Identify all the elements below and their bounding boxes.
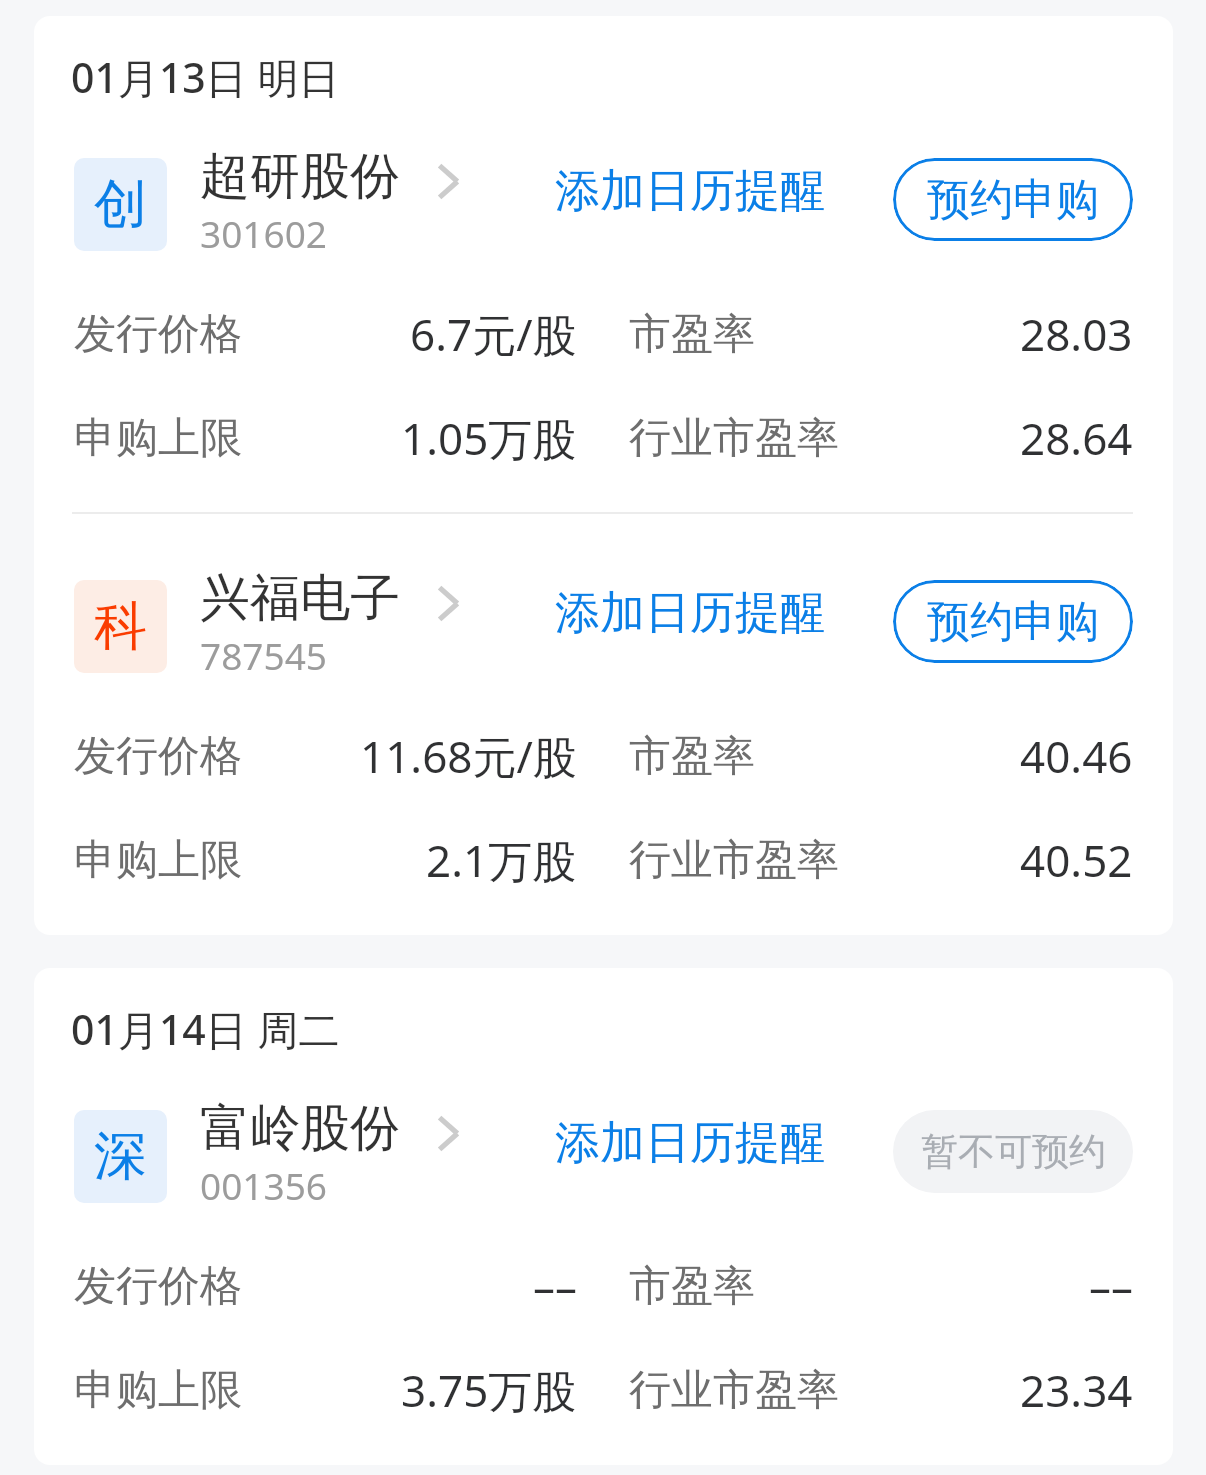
staticText: 申购上限 [74, 834, 242, 887]
staticText: 申购上限 [74, 412, 242, 465]
staticText: 301602 [200, 208, 327, 258]
staticText: 申购上限 [74, 1364, 242, 1417]
staticText: 28.64 [1020, 408, 1133, 468]
staticText: 市盈率 [629, 1260, 755, 1313]
staticText: 787545 [200, 630, 327, 680]
staticText: 40.46 [1020, 726, 1133, 786]
staticText: 行业市盈率 [629, 1364, 839, 1417]
staticText: 暂不可预约 [921, 1128, 1106, 1175]
staticText: 发行价格 [74, 1260, 242, 1313]
staticText: 市盈率 [629, 730, 755, 783]
staticText: 兴福电子 [200, 567, 400, 630]
staticText: 创 [94, 171, 147, 238]
staticText: 发行价格 [74, 730, 242, 783]
staticText: 市盈率 [629, 308, 755, 361]
staticText: 1.05万股 [401, 408, 577, 468]
other: 查看详情 [437, 585, 460, 622]
staticText: 行业市盈率 [629, 834, 839, 887]
staticText: 01月13日 明日 [71, 49, 340, 105]
staticText: 28.03 [1020, 304, 1133, 364]
button[interactable]: 添加日历提醒 [555, 574, 829, 653]
staticText: –– [1089, 1256, 1133, 1316]
other: 查看详情 [437, 1115, 460, 1152]
staticText: 添加日历提醒 [555, 1115, 825, 1172]
staticText: 40.52 [1020, 830, 1133, 890]
button[interactable]: 创 [74, 158, 167, 251]
staticText: 添加日历提醒 [555, 163, 825, 220]
staticText: 6.7元/股 [410, 304, 577, 364]
staticText: 添加日历提醒 [555, 585, 825, 642]
staticText: 富岭股份 [200, 1097, 400, 1160]
staticText: 行业市盈率 [629, 412, 839, 465]
button[interactable]: 预约申购 [893, 158, 1133, 241]
staticText: 科 [94, 593, 147, 660]
button[interactable]: 科 [74, 580, 167, 673]
other: 查看详情 [437, 163, 460, 200]
staticText: 001356 [200, 1160, 327, 1210]
staticText: 01月14日 周二 [71, 1001, 340, 1057]
staticText: –– [533, 1256, 577, 1316]
staticText: 11.68元/股 [360, 726, 577, 786]
button[interactable]: 兴福电子 [200, 567, 460, 680]
staticText: 深 [94, 1123, 147, 1190]
staticText: 23.34 [1020, 1360, 1133, 1420]
button[interactable]: 超研股份 [200, 145, 460, 258]
button[interactable]: 添加日历提醒 [555, 1104, 829, 1183]
button[interactable]: 富岭股份 [200, 1097, 460, 1210]
button[interactable]: 添加日历提醒 [555, 152, 829, 231]
staticText: 超研股份 [200, 145, 400, 208]
staticText: 发行价格 [74, 308, 242, 361]
staticText: 2.1万股 [426, 830, 577, 890]
button[interactable]: 暂不可预约 [893, 1110, 1133, 1193]
button[interactable]: 预约申购 [893, 580, 1133, 663]
staticText: 预约申购 [927, 173, 1099, 227]
staticText: 预约申购 [927, 595, 1099, 649]
staticText: 3.75万股 [401, 1360, 577, 1420]
button[interactable]: 深 [74, 1110, 167, 1203]
